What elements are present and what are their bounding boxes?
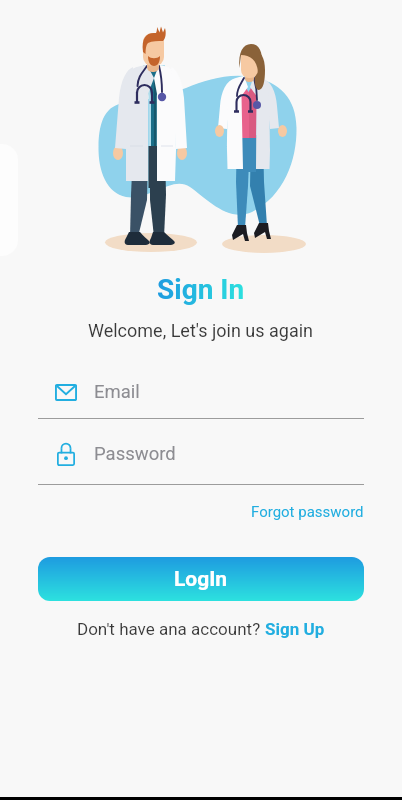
other: Password xyxy=(38,439,94,469)
staticText: Sign Up xyxy=(265,619,325,639)
button[interactable]: Sign Up xyxy=(265,619,325,639)
staticText: Welcome, Let's join us again xyxy=(88,320,314,341)
staticText: Don't have ana account? xyxy=(77,619,265,639)
staticText: Forgot password xyxy=(251,503,364,521)
button[interactable]: Password xyxy=(38,439,364,485)
other: Email xyxy=(38,377,94,407)
button[interactable]: Email xyxy=(38,377,364,419)
button[interactable]: Forgot password xyxy=(251,503,364,521)
button[interactable]: LogIn xyxy=(38,557,364,601)
staticText: Sign In xyxy=(157,273,245,306)
staticText: LogIn xyxy=(174,567,228,592)
staticText: Password xyxy=(94,443,176,465)
staticText: Email xyxy=(94,381,140,403)
